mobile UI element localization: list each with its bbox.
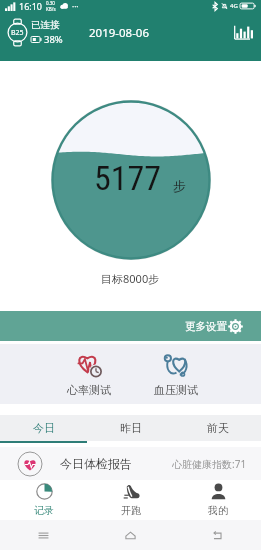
staticText: 2019-08-06: [89, 25, 150, 41]
staticText: 已连接: [31, 19, 60, 31]
staticText: ···: [72, 1, 79, 12]
staticText: 步: [173, 178, 186, 194]
button[interactable]: Back: [174, 520, 261, 550]
staticText: 0.30: [46, 0, 55, 6]
staticText: KB/s: [46, 6, 56, 12]
staticText: 心脏健康指数:71: [172, 457, 247, 471]
button[interactable]: Statistics: [229, 20, 255, 46]
button[interactable]: 更多设置: [0, 311, 261, 341]
button[interactable]: Home: [87, 520, 174, 550]
staticText: B25: [11, 28, 24, 38]
button[interactable]: 前天: [174, 415, 261, 441]
staticText: 开跑: [121, 504, 141, 517]
staticText: 4G: [230, 2, 238, 10]
staticText: 目标8000步: [101, 271, 160, 286]
button[interactable]: 开跑: [87, 480, 174, 520]
button[interactable]: Recents: [0, 520, 87, 550]
staticText: 更多设置: [185, 320, 227, 333]
button[interactable]: 今日体检报告: [0, 447, 261, 480]
staticText: 今日: [33, 421, 55, 435]
button[interactable]: 我的: [174, 480, 261, 520]
staticText: 38%: [44, 33, 63, 46]
staticText: 16:10: [19, 0, 43, 12]
button[interactable]: 血压测试: [132, 344, 219, 404]
staticText: 血压测试: [154, 383, 198, 397]
staticText: 心率测试: [67, 383, 111, 397]
staticText: 昨日: [120, 421, 142, 435]
staticText: 我的: [208, 504, 228, 517]
button[interactable]: 记录: [0, 480, 87, 520]
button[interactable]: 心率测试: [45, 344, 132, 404]
staticText: 前天: [207, 421, 229, 435]
staticText: 5177: [94, 158, 162, 198]
button[interactable]: 昨日: [87, 415, 174, 441]
staticText: 记录: [34, 504, 54, 517]
staticText: 今日体检报告: [60, 456, 132, 471]
button[interactable]: 今日: [0, 415, 87, 441]
